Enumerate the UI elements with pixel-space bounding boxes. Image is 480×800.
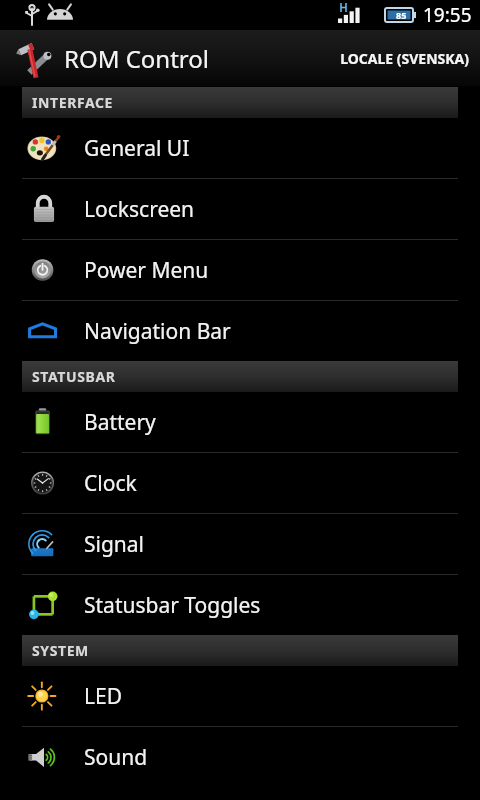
button[interactable]: ROM Control <box>0 30 480 86</box>
staticText: 85 <box>396 9 407 21</box>
staticText: STATUSBAR <box>32 367 116 386</box>
button[interactable]: Power Menu <box>0 240 480 300</box>
staticText: Navigation Bar <box>84 317 231 346</box>
staticText: Signal <box>84 530 145 559</box>
staticText: Sound <box>84 743 148 772</box>
button[interactable]: LED <box>0 666 480 726</box>
button[interactable]: Sound <box>0 727 480 787</box>
staticText: Clock <box>84 469 137 498</box>
staticText: LOCALE (SVENSKA) <box>340 49 469 68</box>
button[interactable]: Signal <box>0 514 480 574</box>
staticText: LED <box>84 682 123 711</box>
staticText: Lockscreen <box>84 195 195 224</box>
button[interactable]: Statusbar Toggles <box>0 575 480 635</box>
staticText: 19:55 <box>423 2 472 28</box>
staticText: ROM Control <box>64 42 210 75</box>
staticText: Battery <box>84 408 156 437</box>
staticText: INTERFACE <box>32 93 113 112</box>
staticText: General UI <box>84 134 190 163</box>
button[interactable]: Lockscreen <box>0 179 480 239</box>
button[interactable]: Navigation Bar <box>0 301 480 361</box>
staticText: Statusbar Toggles <box>84 591 261 620</box>
staticText: SYSTEM <box>32 641 89 660</box>
button[interactable]: Clock <box>0 453 480 513</box>
staticText: Power Menu <box>84 256 209 285</box>
button[interactable]: Battery <box>0 392 480 452</box>
button[interactable]: General UI <box>0 118 480 178</box>
